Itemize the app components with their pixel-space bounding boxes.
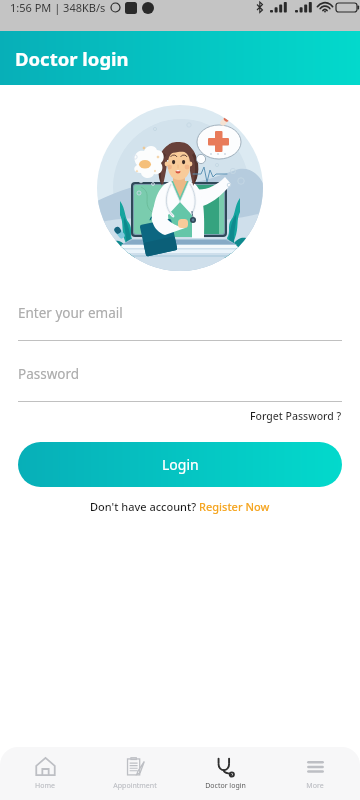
staticText: 1:56 PM | 348KB/s xyxy=(10,0,106,15)
staticText: Doctor login xyxy=(15,46,129,71)
button[interactable]: Login xyxy=(18,442,342,487)
button[interactable]: Register Now xyxy=(199,499,270,514)
staticText: Register Now xyxy=(199,499,270,514)
button[interactable]: Home xyxy=(0,750,90,797)
staticText: Password xyxy=(18,365,80,383)
staticText: More xyxy=(306,781,324,791)
staticText: Home xyxy=(35,781,55,791)
button[interactable]: More xyxy=(270,750,360,797)
staticText: Forget Password ? xyxy=(250,409,342,423)
staticText: Doctor login xyxy=(205,781,246,791)
staticText: Enter your email xyxy=(18,304,123,322)
staticText: Don't have account? xyxy=(90,499,199,514)
button[interactable]: Appointment xyxy=(90,750,180,797)
button[interactable]: Forget Password ? xyxy=(250,409,342,423)
staticText: Login xyxy=(162,455,199,474)
button[interactable]: Doctor login xyxy=(180,750,270,797)
staticText: Appointment xyxy=(113,781,157,791)
